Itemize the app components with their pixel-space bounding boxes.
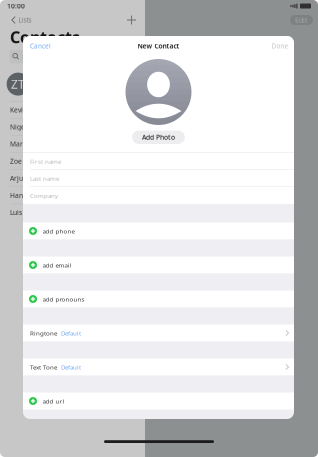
button[interactable]: add phone [23, 222, 294, 239]
staticText: Hana Ito [10, 191, 37, 200]
staticText: Edit [295, 15, 308, 25]
button[interactable]: Text Tone [23, 358, 294, 375]
staticText: Zoe Tanaka [10, 157, 47, 166]
staticText: ZT [11, 76, 25, 92]
staticText: Maria Castillo [10, 139, 54, 149]
staticText: add pronouns [42, 295, 84, 303]
staticText: First name [30, 157, 61, 165]
staticText: Add Photo [142, 133, 175, 142]
staticText: Last name [30, 174, 59, 182]
staticText: Luis Moreno [10, 208, 49, 217]
staticText: Search [22, 52, 40, 61]
staticText: Nigel Brooks [10, 122, 51, 131]
button[interactable]: add url [23, 392, 294, 409]
staticText: Default [61, 329, 81, 337]
staticText: Kevin Alvarez [10, 105, 52, 114]
button[interactable]: add pronouns [23, 290, 294, 307]
staticText: Company [30, 191, 58, 200]
staticText: Lists [18, 16, 31, 24]
staticText: Default [61, 363, 81, 371]
staticText: Done [271, 42, 288, 50]
button[interactable]: Edit [290, 15, 313, 25]
button[interactable]: Done [264, 37, 294, 54]
staticText: Ringtone [30, 329, 57, 337]
button[interactable]: Cancel [23, 37, 58, 54]
button[interactable]: Add Photo [132, 130, 185, 144]
staticText: 10:00 [7, 1, 25, 11]
button[interactable]: add email [23, 256, 294, 273]
button[interactable]: Ringtone [23, 324, 294, 341]
staticText: New Contact [137, 41, 179, 51]
staticText: Arjun Desai [10, 174, 47, 183]
staticText: add email [42, 261, 71, 269]
staticText: add url [42, 397, 64, 405]
staticText: Text Tone [30, 363, 57, 371]
staticText: Contacts [10, 26, 80, 48]
staticText: Cancel [30, 42, 51, 50]
staticText: add phone [42, 227, 74, 235]
